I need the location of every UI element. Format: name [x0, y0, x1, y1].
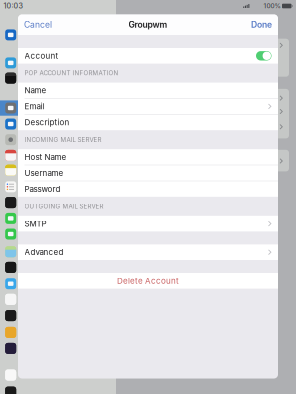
staticText: Account — [24, 51, 58, 61]
staticText: Password — [24, 184, 60, 194]
button[interactable]: Done — [245, 14, 278, 35]
staticText: OUTGOING MAIL SERVER — [24, 203, 103, 210]
staticText: Username — [24, 168, 63, 178]
staticText: Done — [251, 20, 272, 30]
staticText: 10:03 — [3, 2, 23, 10]
button[interactable]: Password — [18, 181, 278, 197]
button[interactable]: SMTP — [18, 216, 278, 231]
button[interactable]: Cancel — [18, 14, 58, 35]
staticText: Host Name — [24, 152, 66, 162]
staticText: INCOMING MAIL SERVER — [24, 136, 101, 143]
button[interactable]: Description — [18, 115, 278, 130]
button[interactable]: Account — [18, 48, 278, 64]
staticText: Groupwm — [128, 20, 167, 30]
button[interactable]: Host Name — [18, 149, 278, 165]
button[interactable]: Email — [18, 99, 278, 114]
button[interactable]: Delete Account — [18, 273, 278, 289]
button[interactable]: Advanced — [18, 244, 278, 260]
staticText: Advanced — [24, 247, 63, 257]
button[interactable]: Username — [18, 165, 278, 181]
staticText: Delete Account — [117, 276, 179, 286]
staticText: POP ACCOUNT INFORMATION — [24, 69, 118, 77]
staticText: Name — [24, 86, 46, 95]
button[interactable]: Name — [18, 83, 278, 98]
staticText: Cancel — [24, 20, 52, 30]
staticText: Description — [24, 118, 69, 127]
staticText: 100% — [263, 2, 280, 10]
staticText: SMTP — [24, 219, 46, 228]
staticText: Email — [24, 102, 44, 111]
